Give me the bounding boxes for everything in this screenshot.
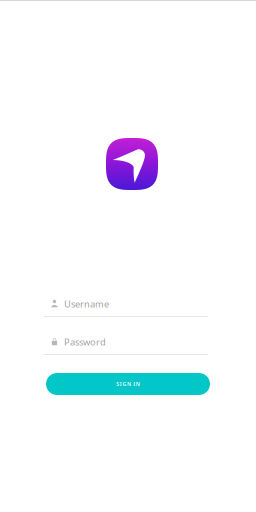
staticText: Password <box>64 336 106 348</box>
button[interactable]: SIGN IN <box>46 373 210 395</box>
staticText: SIGN IN <box>116 380 140 388</box>
staticText: Username <box>64 298 109 310</box>
